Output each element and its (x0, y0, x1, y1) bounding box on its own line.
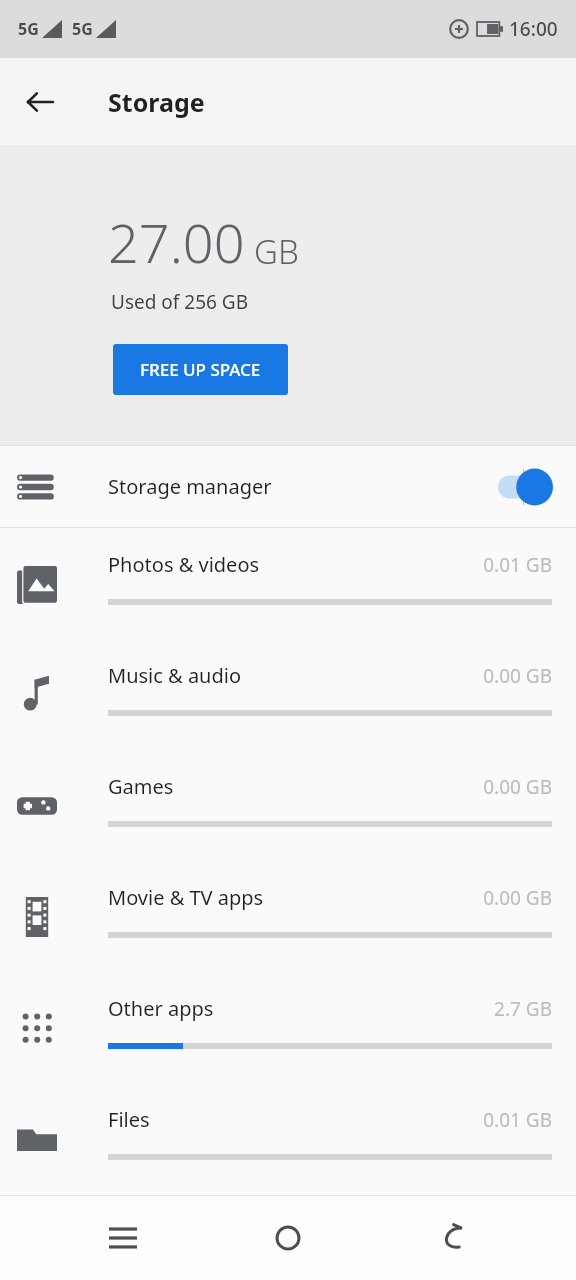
button[interactable]: Recents (81, 1196, 165, 1280)
staticText: 27.00 (108, 205, 245, 279)
button[interactable]: Music & audio (0, 639, 576, 750)
staticText: Other apps (108, 995, 214, 1022)
button[interactable]: Photos & videos (0, 528, 576, 639)
staticText: 0.00 GB (483, 663, 552, 689)
staticText: Photos & videos (108, 551, 260, 578)
button[interactable]: Back (411, 1196, 495, 1280)
button[interactable]: Movie & TV apps (0, 861, 576, 972)
staticText: 5G (72, 18, 93, 40)
staticText: 0.00 GB (483, 885, 552, 911)
button[interactable]: Files (0, 1083, 576, 1194)
button[interactable]: Games (0, 750, 576, 861)
staticText: Used of 256 GB (111, 289, 249, 315)
button[interactable]: Back (14, 76, 66, 128)
staticText: 16:00 (509, 16, 558, 42)
staticText: FREE UP SPACE (140, 358, 261, 381)
staticText: 2.7 GB (494, 996, 552, 1022)
staticText: Games (108, 773, 174, 800)
staticText: Movie & TV apps (108, 884, 264, 911)
staticText: 0.01 GB (483, 552, 552, 578)
staticText: Files (108, 1106, 150, 1133)
staticText: Music & audio (108, 662, 242, 689)
staticText: GB (254, 229, 299, 274)
button[interactable]: Storage manager (0, 446, 576, 527)
button[interactable]: FREE UP SPACE (113, 344, 288, 395)
staticText: 0.01 GB (483, 1107, 552, 1133)
staticText: Storage (108, 85, 205, 119)
button[interactable]: Storage manager toggle (496, 467, 554, 507)
staticText: 0.00 GB (483, 774, 552, 800)
staticText: Storage manager (108, 473, 272, 500)
staticText: 5G (18, 18, 39, 40)
button[interactable]: Home (246, 1196, 330, 1280)
button[interactable]: Other apps (0, 972, 576, 1083)
